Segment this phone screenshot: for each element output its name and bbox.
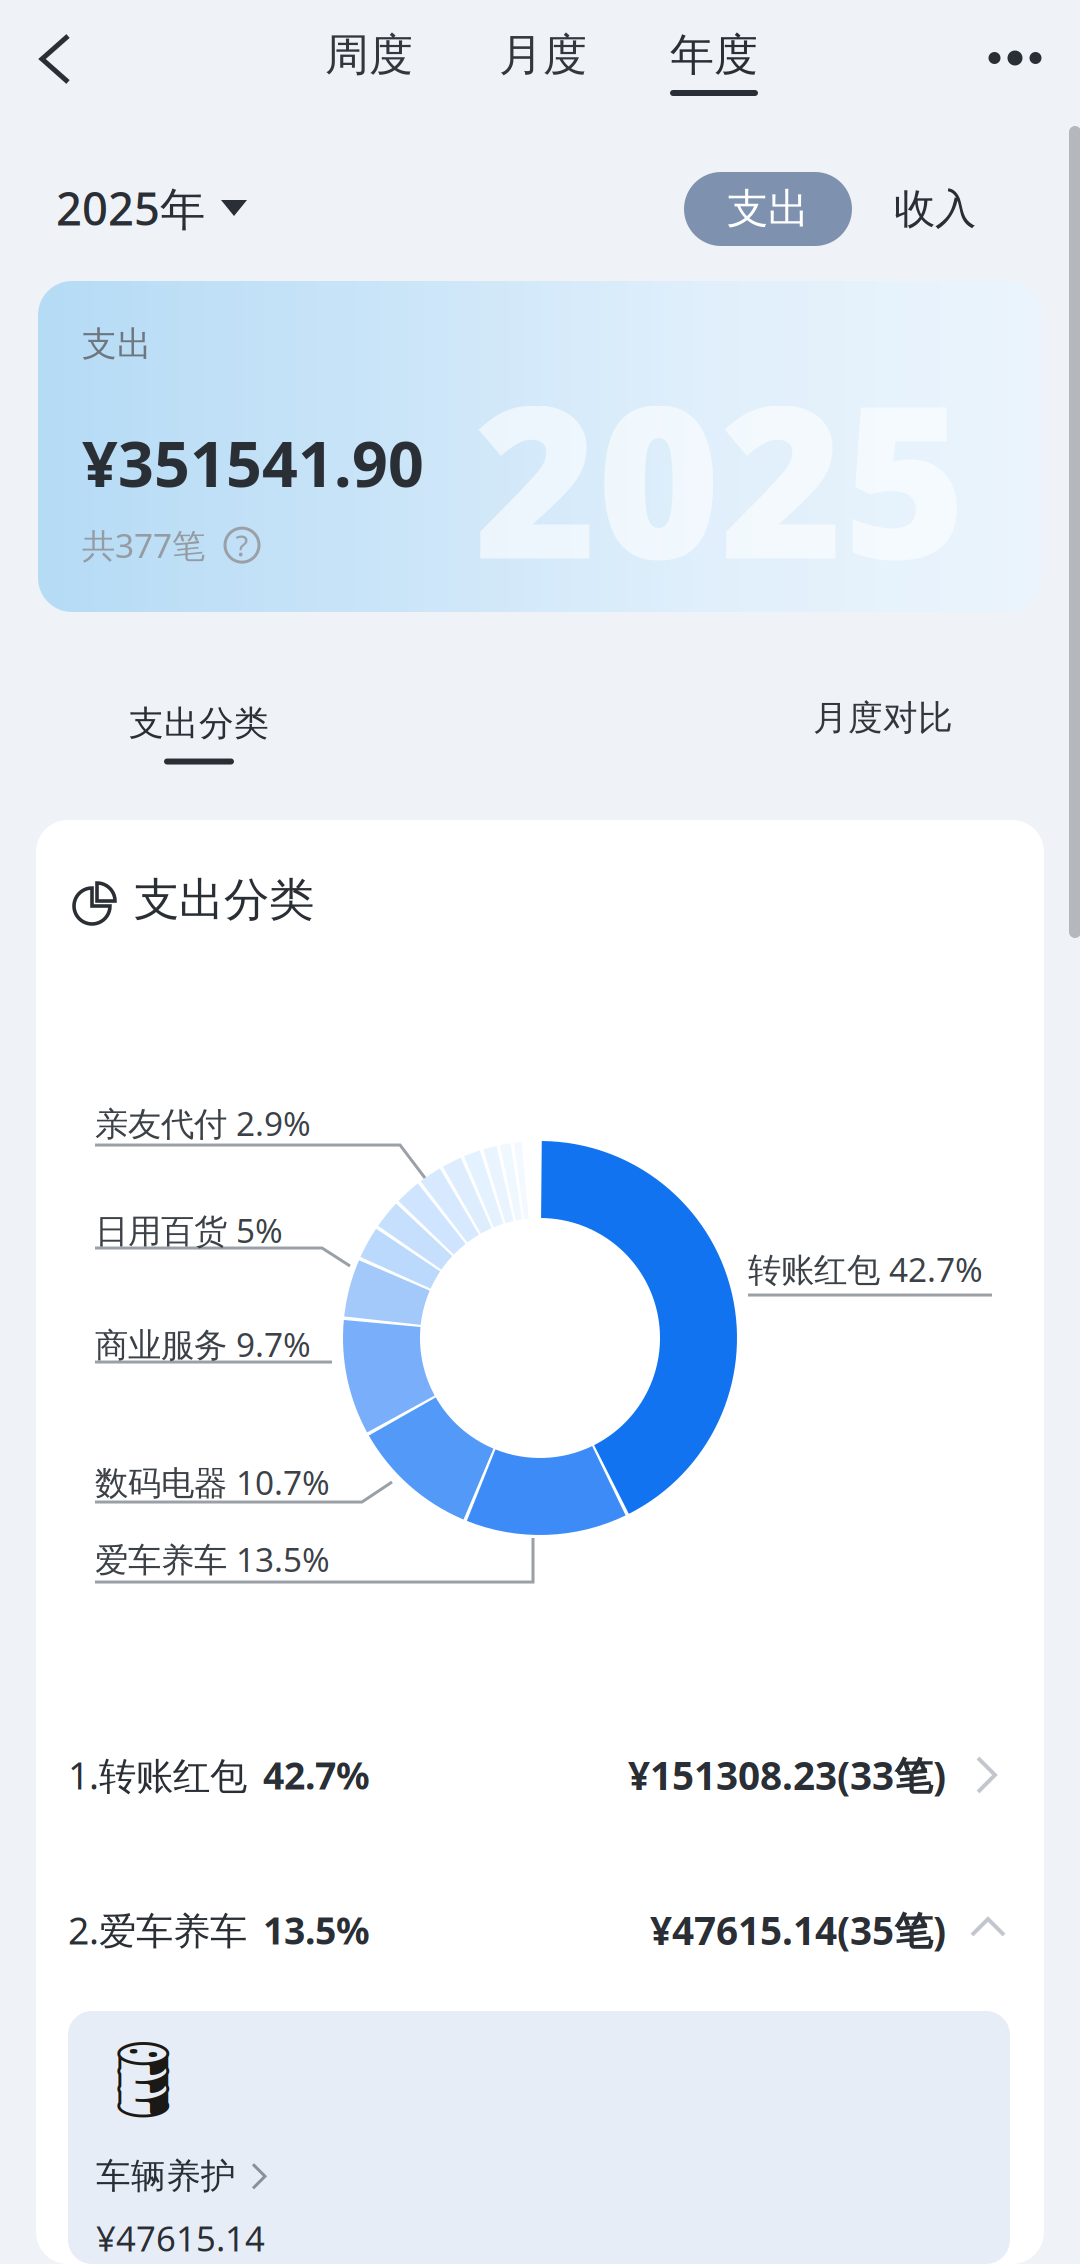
staticText: 周度 — [325, 28, 413, 82]
staticText: 2025 — [474, 337, 966, 617]
staticText: 2.爱车养车 — [68, 1905, 247, 1955]
staticText: 数码电器 10.7% — [95, 1460, 330, 1504]
staticText: 车辆养护 — [96, 2155, 236, 2198]
button[interactable]: 周度 — [306, 15, 432, 115]
staticText: 支出 — [727, 184, 809, 234]
staticText: 1.转账红包 — [68, 1750, 247, 1800]
button[interactable]: 月度对比 — [796, 694, 970, 742]
staticText: ¥47615.14 — [96, 2215, 265, 2261]
staticText: ¥47615.14(35笔) — [650, 1904, 946, 1956]
staticText: ¥351541.90 — [82, 421, 424, 504]
button[interactable]: 支出分类 — [109, 688, 289, 788]
staticText: 🛢 — [96, 2037, 191, 2122]
staticText: 支出分类 — [129, 702, 269, 745]
staticText: 月度 — [499, 28, 587, 82]
staticText: 收入 — [894, 184, 976, 234]
staticText: 日用百货 5% — [95, 1208, 283, 1252]
staticText: 13.5% — [263, 1905, 370, 1955]
staticText: 共377笔 — [82, 523, 205, 567]
button[interactable]: More options — [960, 16, 1070, 100]
button[interactable]: 年度 — [651, 15, 777, 115]
staticText: ? — [235, 526, 248, 565]
staticText: 支出分类 — [134, 872, 314, 928]
button[interactable]: 收入 — [878, 172, 992, 246]
button[interactable]: 支出 — [684, 172, 852, 246]
staticText: 月度对比 — [813, 697, 953, 739]
button[interactable]: 月度 — [480, 15, 606, 115]
button[interactable]: 2.爱车养车 — [36, 1855, 1044, 2005]
staticText: 年度 — [670, 28, 758, 82]
staticText: 亲友代付 2.9% — [95, 1101, 311, 1145]
staticText: 2025年 — [56, 178, 205, 238]
staticText: 支出 — [82, 323, 152, 366]
staticText: ¥151308.23(33笔) — [628, 1749, 946, 1801]
button[interactable]: Back — [12, 14, 124, 106]
staticText: 爱车养车 13.5% — [95, 1537, 330, 1581]
button[interactable]: 2025年 — [56, 160, 316, 256]
staticText: 42.7% — [263, 1750, 370, 1800]
staticText: 转账红包 42.7% — [748, 1247, 983, 1291]
button[interactable]: 1.转账红包 — [36, 1700, 1044, 1850]
staticText: 商业服务 9.7% — [95, 1322, 311, 1366]
